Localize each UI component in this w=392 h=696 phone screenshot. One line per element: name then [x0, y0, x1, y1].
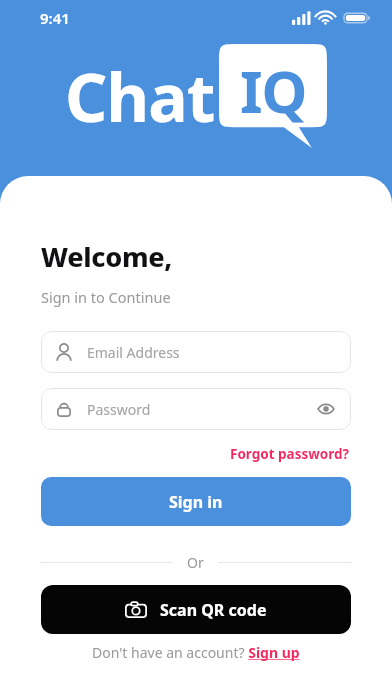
button[interactable]: Email Address [41, 331, 351, 373]
staticText: Sign in to Continue [41, 287, 171, 307]
button[interactable]: Sign in [41, 477, 351, 526]
staticText: Welcome, [41, 238, 173, 275]
button[interactable]: Don't have an account? Sign up [88, 639, 304, 666]
staticText: Sign in [169, 491, 223, 513]
button[interactable]: Password [41, 388, 351, 430]
button[interactable]: Forgot password? [228, 443, 351, 465]
button[interactable]: Scan QR code [41, 585, 351, 634]
staticText: IQ [240, 51, 307, 130]
staticText: Or [187, 553, 204, 572]
staticText: Don't have an account? Sign up [92, 643, 300, 662]
staticText: Chat [65, 51, 215, 141]
button[interactable]: Show password [315, 398, 337, 420]
staticText: 9:41 [40, 8, 70, 28]
staticText: Password [87, 400, 315, 419]
staticText: Scan QR code [160, 599, 267, 621]
staticText: Email Address [87, 343, 180, 362]
